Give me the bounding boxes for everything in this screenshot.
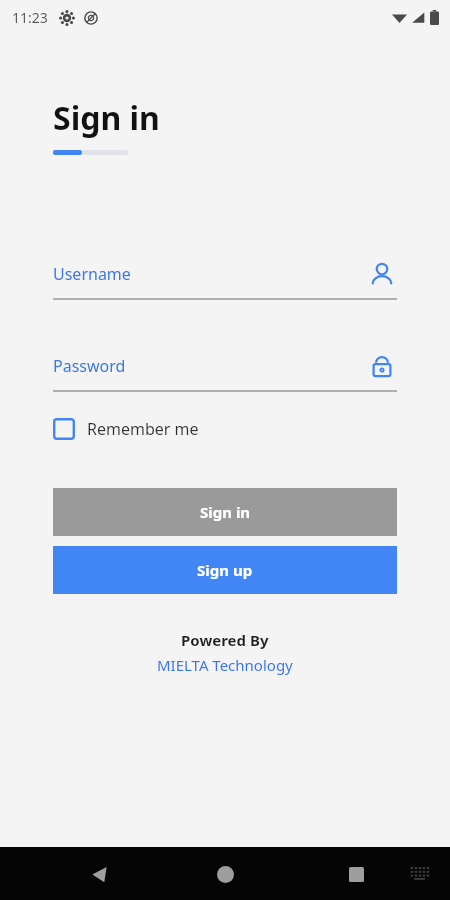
- button[interactable]: Sign up: [53, 546, 397, 594]
- button[interactable]: Sign in: [53, 488, 397, 536]
- button[interactable]: Show keyboard: [404, 858, 436, 890]
- other: Username: [367, 260, 397, 290]
- staticText: Powered By: [181, 630, 269, 650]
- other: Password: [367, 352, 397, 382]
- staticText: Sign in: [53, 96, 160, 140]
- staticText: Username: [53, 263, 131, 285]
- staticText: Password: [53, 355, 126, 377]
- button[interactable]: Username: [53, 256, 397, 300]
- staticText: Sign up: [197, 560, 253, 580]
- staticText: MIELTA Technology: [157, 655, 293, 675]
- button[interactable]: Recent apps: [335, 853, 377, 895]
- staticText: Sign in: [200, 502, 251, 522]
- button[interactable]: Back: [78, 853, 120, 895]
- staticText: Remember me: [87, 418, 199, 440]
- button[interactable]: MIELTA Technology: [157, 655, 293, 675]
- button[interactable]: Password: [53, 348, 397, 392]
- button[interactable]: Remember me: [53, 418, 199, 440]
- button[interactable]: Home: [203, 852, 247, 896]
- staticText: 11:23: [12, 8, 48, 27]
